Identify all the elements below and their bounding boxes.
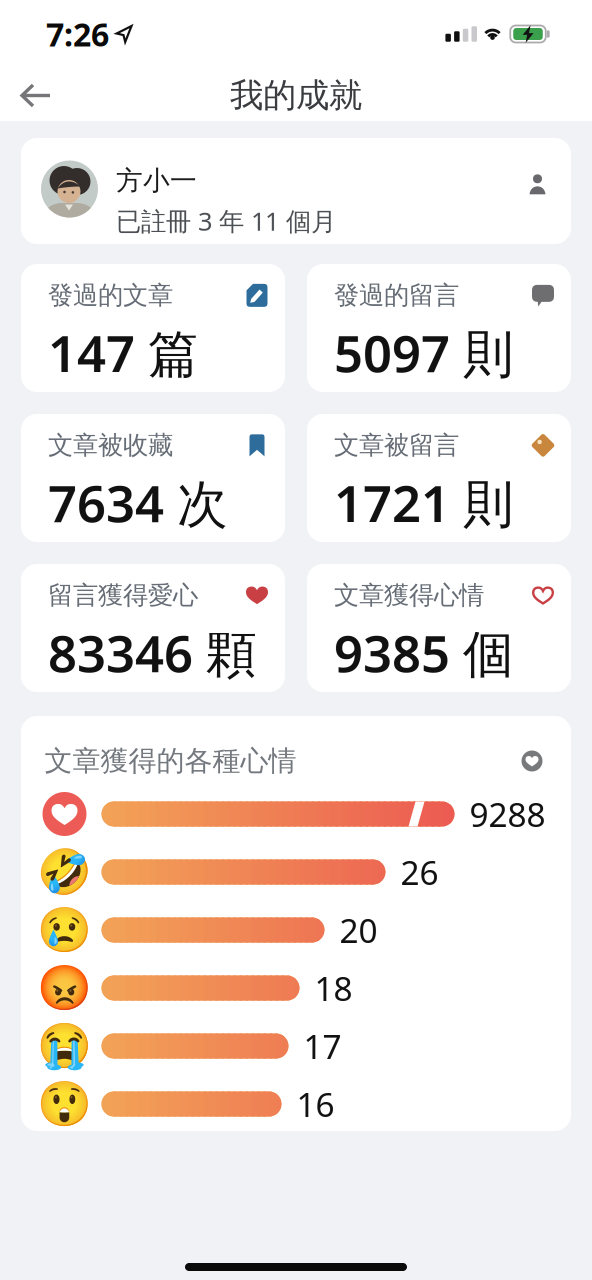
staticText: 方小一 [116, 164, 197, 197]
staticText: 7634 次 [48, 469, 228, 536]
staticText: 已註冊 3 年 11 個月 [116, 204, 336, 238]
staticText: 文章獲得心情 [334, 580, 484, 611]
staticText: 9385 個 [334, 619, 514, 686]
staticText: 文章獲得的各種心情 [44, 744, 296, 778]
staticText: 😭 [37, 1021, 92, 1071]
staticText: 26 [400, 850, 438, 894]
staticText: 1721 則 [334, 469, 514, 536]
staticText: 9288 [469, 792, 545, 836]
staticText: 留言獲得愛心 [48, 580, 198, 611]
staticText: 83346 顆 [48, 619, 257, 686]
staticText: 16 [296, 1082, 334, 1126]
staticText: 文章被留言 [334, 430, 459, 461]
staticText: 發過的留言 [334, 280, 459, 311]
button[interactable]: Account [528, 154, 571, 195]
staticText: 😲 [37, 1079, 92, 1129]
staticText: 發過的文章 [48, 280, 173, 311]
staticText: 😡 [37, 963, 92, 1013]
staticText: 18 [314, 966, 352, 1010]
staticText: 🤣 [37, 847, 92, 897]
staticText: 我的成就 [230, 75, 362, 116]
staticText: 17 [303, 1024, 341, 1068]
staticText: 5097 則 [334, 319, 514, 386]
staticText: 7:26 [46, 13, 109, 55]
staticText: 147 篇 [48, 319, 199, 386]
button[interactable]: Back [10, 73, 60, 117]
staticText: 文章被收藏 [48, 430, 173, 461]
staticText: 20 [339, 908, 377, 952]
staticText: 😢 [37, 905, 92, 955]
button[interactable]: Reactions [521, 750, 544, 771]
